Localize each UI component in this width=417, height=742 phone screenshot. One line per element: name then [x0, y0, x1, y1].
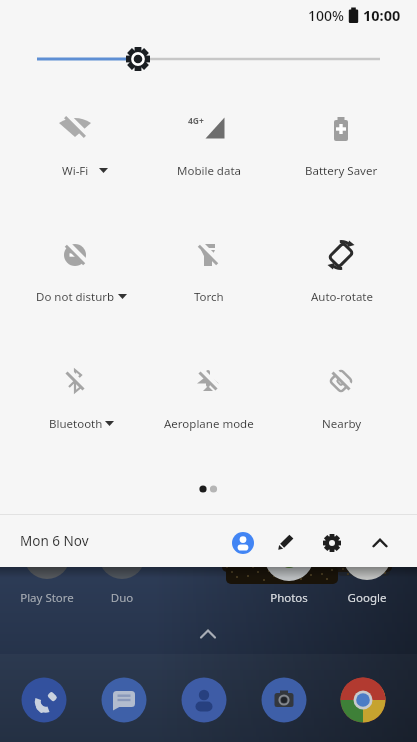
- staticText: Bluetooth: [49, 416, 103, 432]
- button[interactable]: Bluetooth: [9, 355, 142, 434]
- button[interactable]: [180, 676, 228, 724]
- button[interactable]: [0, 45, 417, 73]
- staticText: Do not disturb: [36, 289, 115, 305]
- button[interactable]: [193, 620, 223, 650]
- staticText: Torch: [194, 289, 224, 305]
- staticText: Wi-Fi: [62, 163, 89, 179]
- button[interactable]: Play Store: [7, 590, 87, 606]
- button[interactable]: Mon 6 Nov: [20, 532, 89, 550]
- button[interactable]: Do not disturb: [9, 229, 142, 307]
- staticText: Nearby: [322, 416, 362, 432]
- button[interactable]: Battery Saver: [275, 101, 408, 181]
- button[interactable]: Wi-Fi: [9, 101, 142, 181]
- button[interactable]: [100, 676, 148, 724]
- button[interactable]: [339, 676, 387, 724]
- staticText: 100%: [308, 6, 344, 25]
- button[interactable]: [265, 523, 305, 563]
- staticText: Mobile data: [177, 163, 241, 179]
- button[interactable]: Nearby: [275, 355, 408, 434]
- button[interactable]: [260, 676, 308, 724]
- button[interactable]: Duo: [82, 590, 162, 606]
- staticText: Auto-rotate: [311, 289, 373, 305]
- button[interactable]: [360, 523, 400, 563]
- staticText: Battery Saver: [305, 163, 378, 179]
- staticText: Mon 6 Nov: [20, 532, 89, 550]
- button[interactable]: Photos: [249, 590, 329, 606]
- button[interactable]: Mobile data: [142, 101, 275, 181]
- button[interactable]: [20, 676, 68, 724]
- button[interactable]: Aeroplane mode: [142, 355, 275, 434]
- staticText: Aeroplane mode: [164, 416, 254, 432]
- button[interactable]: Torch: [142, 229, 275, 307]
- button[interactable]: [223, 523, 263, 563]
- button[interactable]: [312, 523, 352, 563]
- staticText: 10:00: [363, 5, 401, 25]
- button[interactable]: Google: [327, 590, 407, 606]
- staticText: 4G+: [188, 115, 204, 127]
- button[interactable]: Auto-rotate: [275, 229, 408, 307]
